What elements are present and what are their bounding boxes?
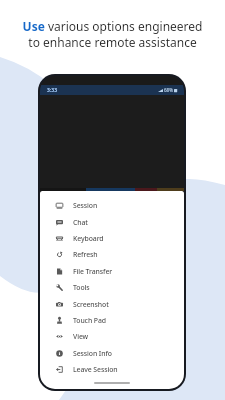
button[interactable]: Session Info (40, 345, 184, 361)
staticText: Screenshot (73, 300, 109, 309)
staticText: Refresh (73, 250, 98, 259)
button[interactable]: Refresh (40, 246, 184, 262)
button[interactable]: Chat (40, 214, 184, 230)
button[interactable]: Session (40, 197, 184, 213)
staticText: 68% (164, 87, 173, 93)
button[interactable]: Keyboard (40, 230, 184, 246)
staticText: 3:33 (47, 87, 57, 94)
button[interactable]: View (40, 328, 184, 344)
button[interactable]: File Transfer (40, 263, 184, 279)
button[interactable]: Screenshot (40, 296, 184, 312)
staticText: Use various options engineered to enhanc… (6, 18, 219, 50)
staticText: Tools (73, 283, 90, 292)
staticText: Session (73, 201, 98, 210)
staticText: Touch Pad (73, 316, 106, 325)
staticText: View (73, 332, 89, 341)
button[interactable]: Tools (40, 279, 184, 295)
staticText: Keyboard (73, 234, 104, 243)
staticText: Session Info (73, 349, 112, 358)
staticText: File Transfer (73, 267, 113, 276)
staticText: Chat (73, 218, 88, 227)
button[interactable]: Leave Session (40, 361, 184, 377)
button[interactable]: Touch Pad (40, 312, 184, 328)
staticText: Leave Session (73, 365, 118, 374)
